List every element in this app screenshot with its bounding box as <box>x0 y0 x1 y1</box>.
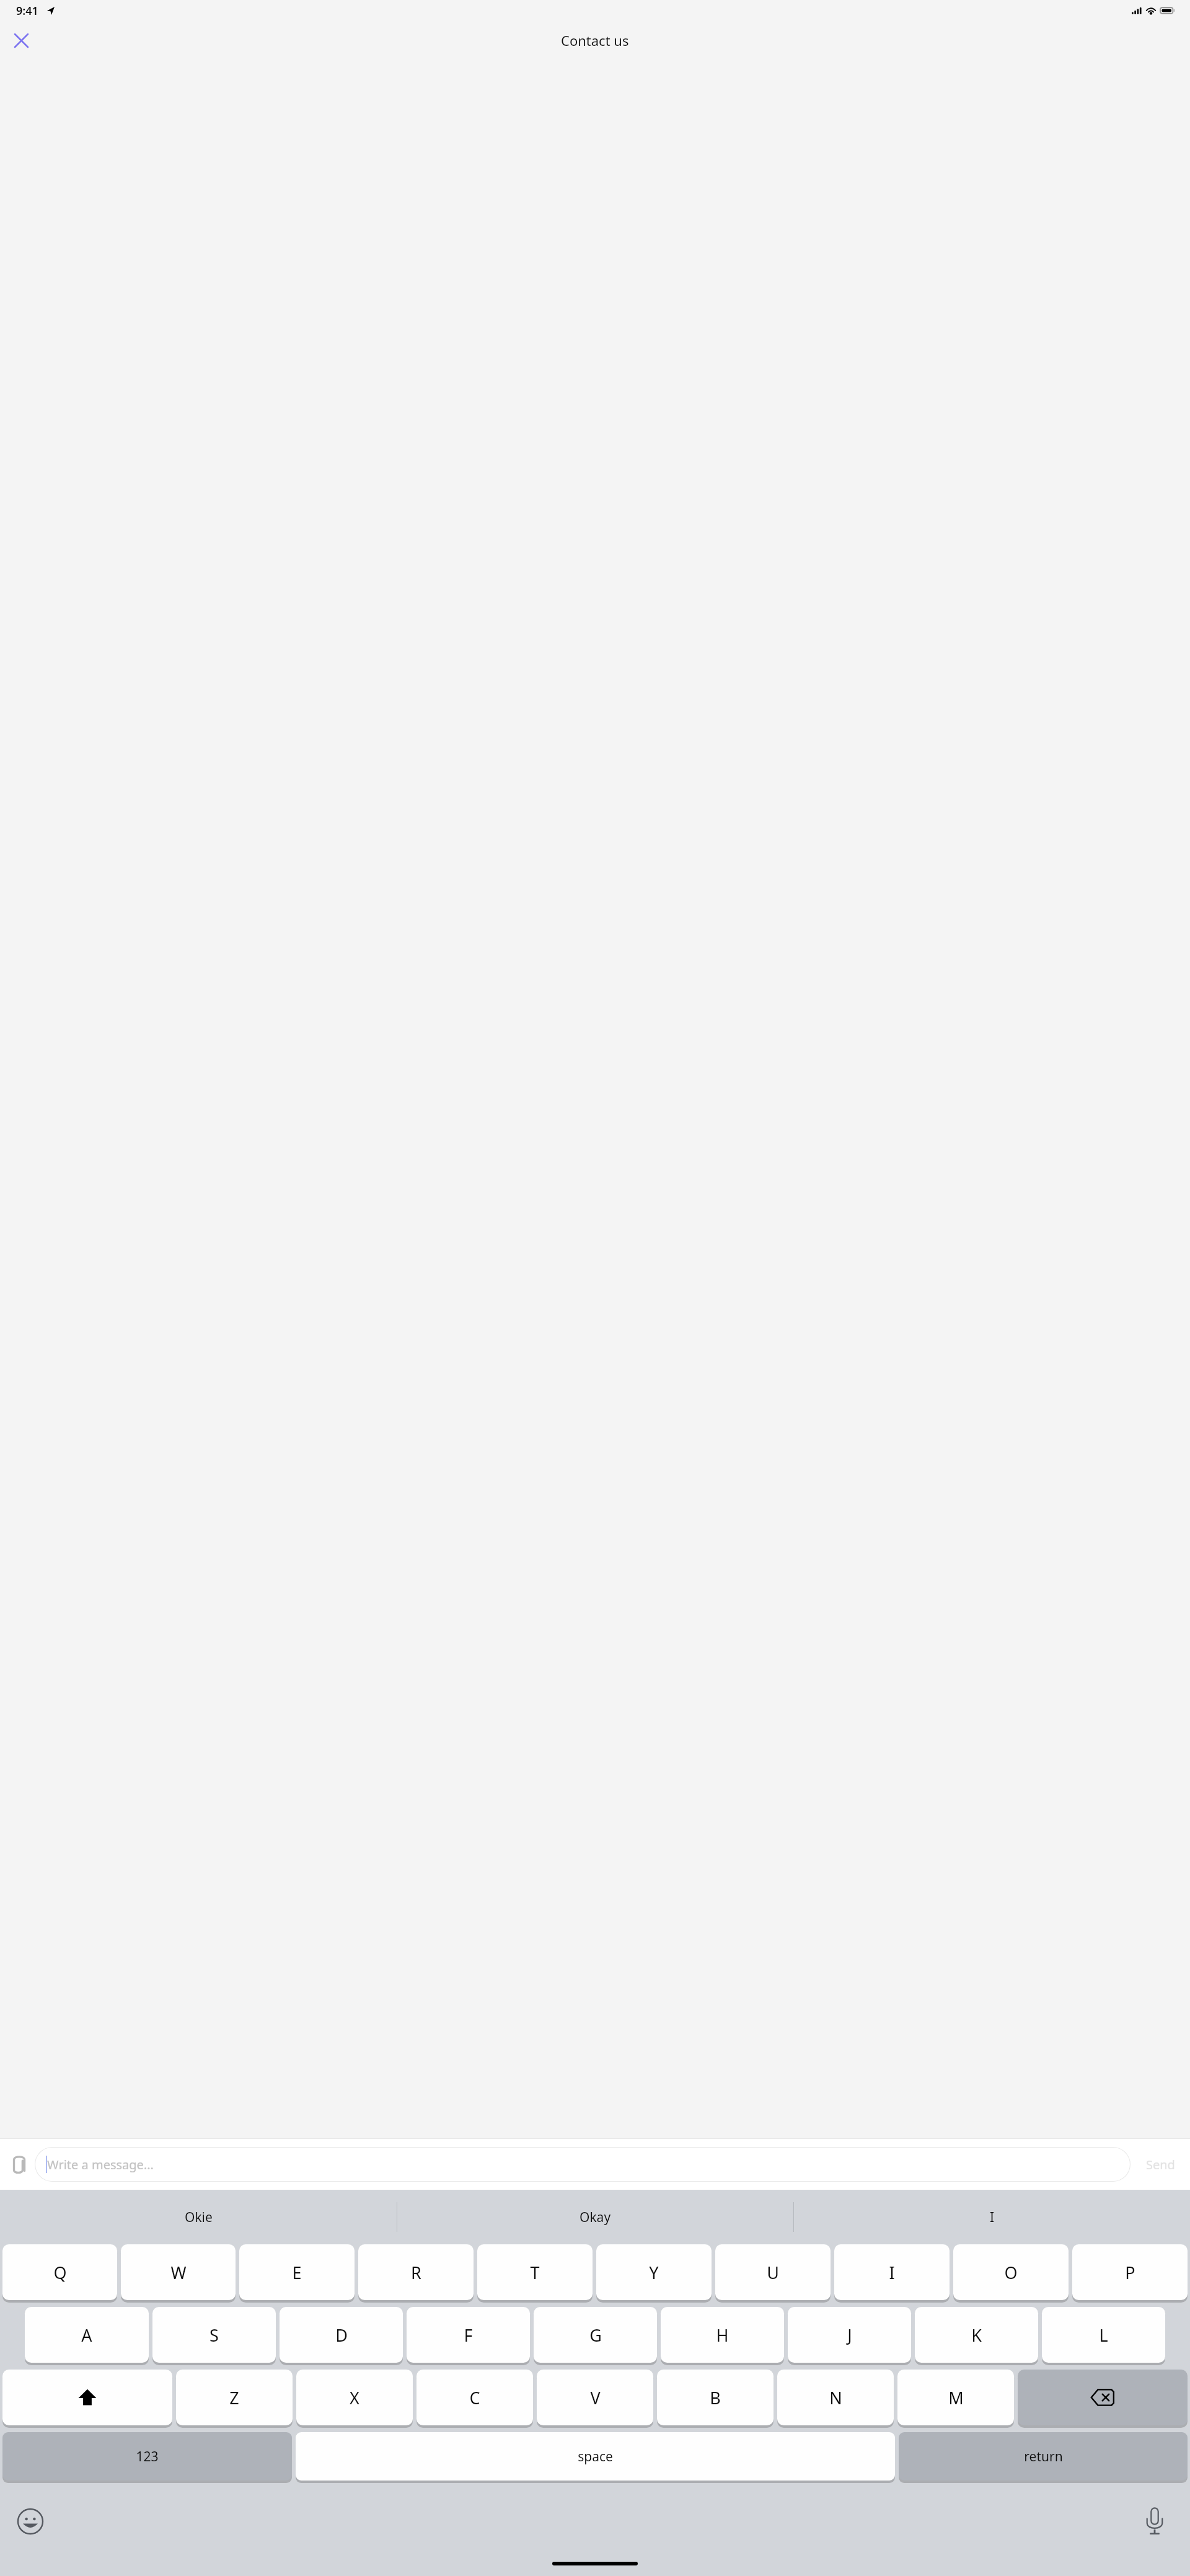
button[interactable]: A <box>25 2307 149 2363</box>
staticText: N <box>829 2386 842 2409</box>
button[interactable]: G <box>534 2307 657 2363</box>
button[interactable]: X <box>296 2370 413 2425</box>
button[interactable]: P <box>1072 2244 1188 2300</box>
staticText: T <box>530 2261 540 2284</box>
staticText: Send <box>1146 2156 1175 2173</box>
button[interactable]: space <box>296 2432 895 2481</box>
staticText: G <box>589 2324 602 2347</box>
button[interactable]: Emoji keyboard <box>9 2500 52 2543</box>
staticText: 9:41 <box>16 3 38 19</box>
button[interactable]: I <box>794 2190 1190 2244</box>
staticText: K <box>971 2324 982 2347</box>
staticText: R <box>411 2261 421 2284</box>
button[interactable]: R <box>358 2244 474 2300</box>
button[interactable]: H <box>661 2307 784 2363</box>
button[interactable]: K <box>915 2307 1038 2363</box>
button[interactable]: I <box>834 2244 950 2300</box>
staticText: W <box>170 2261 187 2284</box>
button[interactable]: Backspace <box>1018 2370 1188 2425</box>
button[interactable]: Okay <box>397 2190 793 2244</box>
button[interactable]: Okie <box>0 2190 397 2244</box>
staticText: B <box>710 2386 721 2409</box>
button[interactable]: Send <box>1130 2145 1190 2184</box>
staticText: M <box>948 2386 964 2409</box>
button[interactable]: Attach file <box>2 2148 35 2180</box>
staticText: Z <box>229 2386 239 2409</box>
staticText: Y <box>649 2261 659 2284</box>
button[interactable]: Close <box>5 24 37 56</box>
button[interactable]: Q <box>2 2244 117 2300</box>
staticText: X <box>350 2386 359 2409</box>
staticText: space <box>578 2448 613 2466</box>
staticText: H <box>716 2324 729 2347</box>
staticText: E <box>292 2261 302 2284</box>
button[interactable]: O <box>953 2244 1069 2300</box>
button[interactable]: V <box>537 2370 653 2425</box>
staticText: U <box>767 2261 779 2284</box>
button[interactable]: U <box>715 2244 831 2300</box>
staticText: Okie <box>185 2208 213 2226</box>
staticText: Okay <box>580 2208 611 2226</box>
staticText: C <box>469 2386 480 2409</box>
staticText: Q <box>53 2261 67 2284</box>
button[interactable]: L <box>1042 2307 1165 2363</box>
staticText: O <box>1004 2261 1018 2284</box>
button[interactable]: E <box>239 2244 355 2300</box>
staticText: D <box>335 2324 348 2347</box>
staticText: J <box>847 2324 852 2347</box>
button[interactable]: D <box>280 2307 403 2363</box>
button[interactable]: return <box>899 2432 1188 2481</box>
staticText: I <box>889 2261 895 2284</box>
button[interactable]: S <box>152 2307 276 2363</box>
button[interactable]: Dictate <box>1133 2500 1176 2543</box>
button[interactable]: Write a message... <box>35 2147 1130 2182</box>
button[interactable]: 123 <box>2 2432 292 2481</box>
staticText: V <box>590 2386 601 2409</box>
staticText: F <box>464 2324 473 2347</box>
button[interactable]: N <box>777 2370 894 2425</box>
staticText: return <box>1024 2448 1063 2466</box>
button[interactable]: Z <box>176 2370 293 2425</box>
staticText: S <box>209 2324 219 2347</box>
button[interactable]: B <box>657 2370 773 2425</box>
button[interactable]: M <box>897 2370 1014 2425</box>
staticText: 123 <box>136 2448 159 2466</box>
button[interactable]: Shift <box>2 2370 172 2425</box>
staticText: I <box>990 2208 995 2226</box>
button[interactable]: T <box>477 2244 593 2300</box>
button[interactable]: Y <box>596 2244 712 2300</box>
button[interactable]: J <box>788 2307 911 2363</box>
staticText: L <box>1099 2324 1108 2347</box>
staticText: Contact us <box>561 31 629 50</box>
staticText: A <box>81 2324 92 2347</box>
button[interactable]: F <box>407 2307 530 2363</box>
staticText: P <box>1125 2261 1135 2284</box>
button[interactable]: C <box>416 2370 533 2425</box>
staticText: Write a message... <box>47 2156 154 2173</box>
button[interactable]: W <box>121 2244 236 2300</box>
